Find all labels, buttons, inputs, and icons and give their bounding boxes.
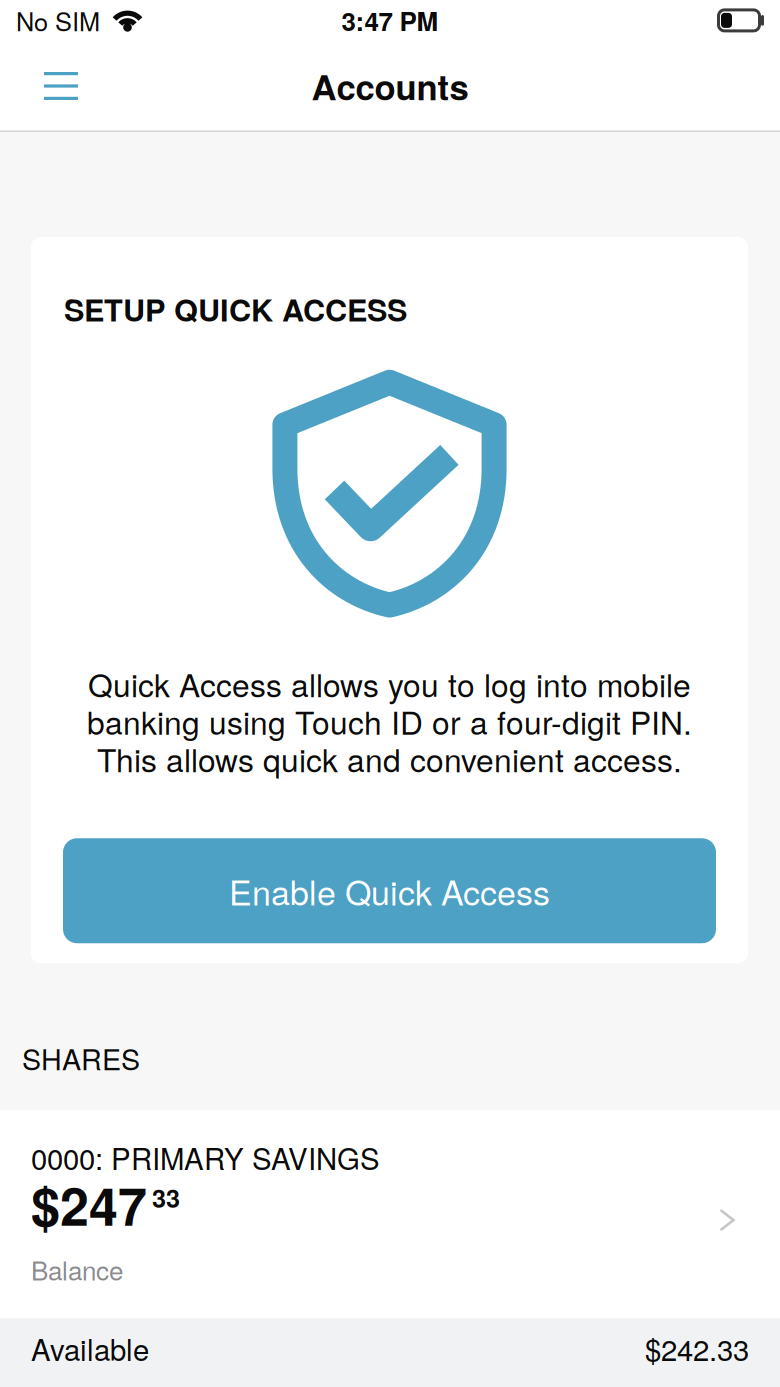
staticText: Available xyxy=(31,1327,149,1369)
staticText: SHARES xyxy=(22,1037,140,1078)
staticText: $247 xyxy=(31,1167,147,1242)
button[interactable]: Enable Quick Access xyxy=(63,838,716,943)
staticText: Balance xyxy=(31,1251,123,1288)
staticText: 3:47 PM xyxy=(341,2,438,39)
staticText: Enable Quick Access xyxy=(229,866,550,915)
button[interactable]: 0000: PRIMARY SAVINGS xyxy=(0,1110,780,1318)
staticText: banking using Touch ID or a four-digit P… xyxy=(87,698,692,744)
staticText: 33 xyxy=(152,1179,180,1215)
staticText: 0000: PRIMARY SAVINGS xyxy=(31,1136,380,1178)
staticText: This allows quick and convenient access. xyxy=(97,736,682,781)
staticText: $242.33 xyxy=(645,1327,749,1369)
button[interactable]: Menu xyxy=(0,52,108,132)
staticText: No SIM xyxy=(16,2,100,38)
staticText: Accounts xyxy=(311,61,468,111)
staticText: SETUP QUICK ACCESS xyxy=(64,287,407,331)
staticText: Quick Access allows you to log into mobi… xyxy=(88,661,691,706)
